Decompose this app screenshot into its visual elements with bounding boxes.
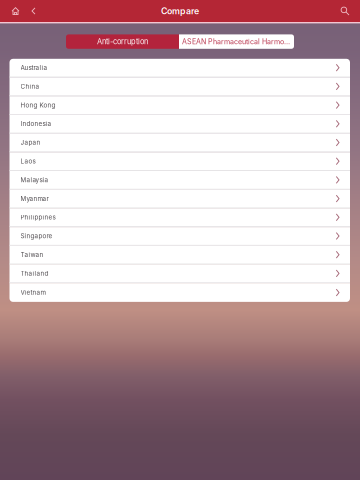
button[interactable]: Vietnam [9, 283, 350, 302]
button[interactable]: Japan [9, 134, 350, 152]
staticText: Indonesia [20, 120, 51, 128]
staticText: China [20, 83, 39, 90]
button[interactable]: Australia [9, 59, 350, 77]
button[interactable]: Myanmar [9, 190, 350, 208]
staticText: Japan [20, 139, 40, 146]
staticText: Vietnam [20, 289, 45, 296]
button[interactable]: Anti-corruption [66, 34, 179, 49]
button[interactable]: Home [6, 0, 25, 21]
button[interactable]: Thailand [9, 264, 350, 283]
staticText: Compare [161, 6, 199, 16]
staticText: Myanmar [20, 195, 48, 202]
button[interactable]: Singapore [9, 227, 350, 246]
staticText: ASEAN Pharmaceutical Harmo… [182, 37, 290, 46]
staticText: Malaysia [20, 176, 48, 184]
staticText: Philippines [20, 213, 55, 221]
staticText: Hong Kong [20, 101, 55, 109]
button[interactable]: Indonesia [9, 115, 350, 134]
staticText: Singapore [20, 232, 52, 240]
staticText: Anti-corruption [97, 37, 148, 46]
staticText: Thailand [20, 270, 48, 277]
button[interactable]: Philippines [9, 208, 350, 227]
button[interactable]: Taiwan [9, 246, 350, 264]
staticText: Australia [20, 64, 47, 71]
staticText: Taiwan [20, 251, 43, 258]
button[interactable]: Back [25, 0, 42, 21]
button[interactable]: China [9, 77, 350, 96]
button[interactable]: Malaysia [9, 171, 350, 190]
button[interactable]: Laos [9, 152, 350, 171]
button[interactable]: Search [334, 0, 356, 21]
button[interactable]: ASEAN Pharmaceutical Harmo… [179, 34, 294, 49]
button[interactable]: Hong Kong [9, 96, 350, 115]
staticText: Laos [20, 157, 35, 165]
